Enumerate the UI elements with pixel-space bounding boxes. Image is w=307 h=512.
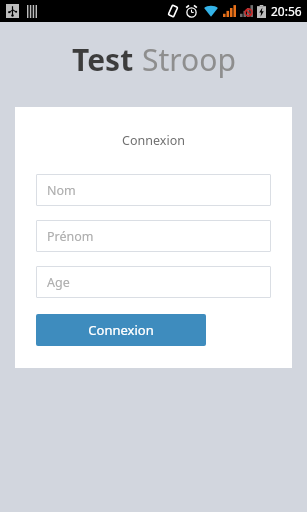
button[interactable]: Prénom <box>36 220 271 252</box>
staticText: Connexion <box>88 321 154 339</box>
staticText: Test <box>72 39 134 80</box>
button[interactable]: Connexion <box>36 314 206 346</box>
button[interactable]: Age <box>36 266 271 298</box>
staticText: Nom <box>47 182 76 199</box>
staticText: Stroop <box>142 39 236 80</box>
staticText: Prénom <box>47 228 94 245</box>
staticText: Connexion <box>122 132 185 149</box>
staticText: 20:56 <box>271 3 302 19</box>
staticText: Age <box>47 274 70 291</box>
button[interactable]: Nom <box>36 174 271 206</box>
